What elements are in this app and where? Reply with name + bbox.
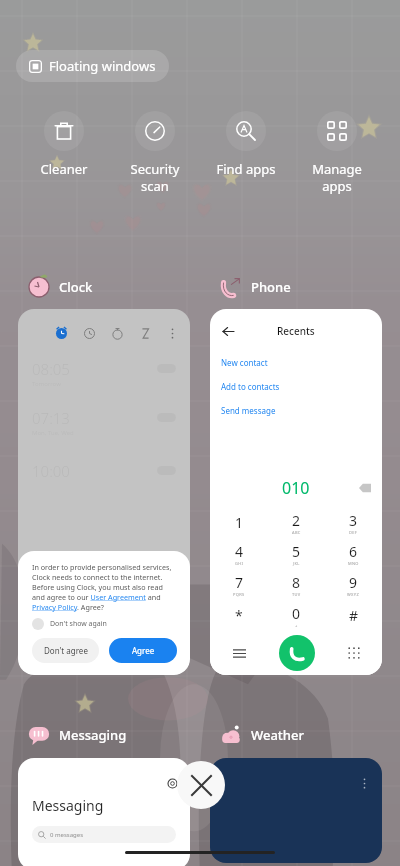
button[interactable]: 2 bbox=[268, 507, 325, 538]
button[interactable]: Send message bbox=[221, 405, 276, 416]
staticText: Floating windows bbox=[49, 57, 156, 75]
button[interactable]: More options bbox=[210, 758, 382, 863]
staticText: Security scan bbox=[110, 160, 200, 195]
button[interactable]: Clock bbox=[18, 274, 93, 300]
button[interactable]: Add to contacts bbox=[221, 381, 280, 392]
button[interactable]: Manage apps bbox=[292, 111, 382, 195]
staticText: 3 bbox=[349, 511, 358, 530]
staticText: TUV bbox=[292, 592, 301, 597]
button[interactable]: Cleaner bbox=[19, 111, 109, 178]
staticText: + bbox=[295, 623, 298, 628]
button[interactable]: Call log bbox=[210, 631, 268, 675]
button[interactable]: Messaging bbox=[18, 758, 190, 866]
button[interactable]: Find apps bbox=[201, 111, 291, 178]
other: More options bbox=[359, 778, 370, 789]
button[interactable]: Security scan bbox=[110, 111, 200, 195]
staticText: 1 bbox=[235, 513, 244, 532]
staticText: MNO bbox=[348, 561, 359, 566]
staticText: ABC bbox=[292, 530, 301, 535]
other: Search bbox=[167, 778, 178, 789]
staticText: 8 bbox=[292, 573, 301, 592]
button[interactable]: 5 bbox=[268, 538, 325, 569]
staticText: * bbox=[235, 606, 243, 625]
staticText: # bbox=[349, 606, 359, 625]
staticText: JKL bbox=[293, 561, 300, 566]
button[interactable]: 3 bbox=[325, 507, 382, 538]
button[interactable]: New contact bbox=[221, 357, 268, 368]
other: Back bbox=[223, 326, 234, 337]
staticText: Cleaner bbox=[19, 160, 109, 178]
staticText: Manage apps bbox=[292, 160, 382, 195]
staticText: PQRS bbox=[233, 592, 245, 597]
staticText: Phone bbox=[251, 278, 291, 296]
button[interactable]: Agree bbox=[109, 638, 177, 663]
staticText: 7 bbox=[235, 573, 244, 592]
button[interactable]: Keypad bbox=[325, 631, 382, 675]
button[interactable]: Phone bbox=[210, 274, 291, 300]
button[interactable]: # bbox=[325, 600, 382, 631]
staticText: Messaging bbox=[32, 796, 104, 815]
button[interactable]: * bbox=[210, 600, 268, 631]
staticText: Weather bbox=[251, 726, 304, 744]
staticText: 9 bbox=[349, 573, 358, 592]
staticText: 4 bbox=[235, 542, 244, 561]
staticText: Clock bbox=[59, 278, 93, 296]
button[interactable]: Don't agree bbox=[32, 638, 99, 663]
staticText: 5 bbox=[292, 542, 301, 561]
button[interactable]: Close all bbox=[177, 761, 225, 809]
button[interactable]: Call bbox=[279, 635, 315, 671]
staticText: 2 bbox=[292, 511, 301, 530]
staticText: 0 bbox=[292, 604, 301, 623]
staticText: Messaging bbox=[59, 726, 127, 744]
button[interactable]: 8 bbox=[268, 569, 325, 600]
button[interactable]: Don't show again bbox=[32, 618, 107, 630]
staticText: DEF bbox=[349, 530, 358, 535]
button[interactable]: Messaging bbox=[18, 722, 127, 748]
staticText: 0 messages bbox=[50, 831, 84, 839]
button[interactable]: 6 bbox=[325, 538, 382, 569]
staticText: Don't show again bbox=[50, 619, 107, 629]
staticText: Recents bbox=[277, 324, 315, 338]
button[interactable]: Floating windows bbox=[16, 50, 169, 82]
button[interactable]: 0 bbox=[268, 600, 325, 631]
staticText: 010 bbox=[282, 477, 310, 499]
button[interactable]: 0 messages bbox=[32, 826, 176, 843]
button[interactable]: 4 bbox=[210, 538, 268, 569]
button[interactable]: Back bbox=[210, 309, 382, 675]
button[interactable]: 7 bbox=[210, 569, 268, 600]
staticText: Agree bbox=[132, 645, 155, 656]
button[interactable]: 1 bbox=[210, 507, 268, 538]
staticText: Find apps bbox=[201, 160, 291, 178]
other: Backspace bbox=[359, 482, 371, 494]
button[interactable]: 08:05 bbox=[18, 309, 190, 675]
button[interactable]: 9 bbox=[325, 569, 382, 600]
staticText: GHI bbox=[235, 561, 244, 566]
button[interactable]: Weather bbox=[210, 722, 304, 748]
staticText: Don't agree bbox=[44, 645, 88, 656]
staticText: WXYZ bbox=[347, 592, 360, 597]
staticText: In order to provide personalised service… bbox=[32, 562, 177, 612]
staticText: 6 bbox=[349, 542, 358, 561]
